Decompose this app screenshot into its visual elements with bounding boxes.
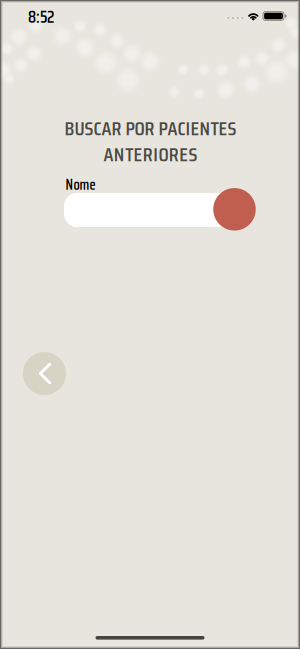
textField[interactable] (64, 195, 240, 225)
staticText: Nome (65, 173, 95, 196)
button[interactable]: Voltar (23, 352, 66, 395)
staticText: ANTERIORES (103, 139, 197, 170)
button[interactable]: Buscar (213, 188, 256, 231)
staticText: 8:52 (28, 4, 54, 30)
staticText: BUSCAR POR PACIENTES (64, 112, 236, 144)
